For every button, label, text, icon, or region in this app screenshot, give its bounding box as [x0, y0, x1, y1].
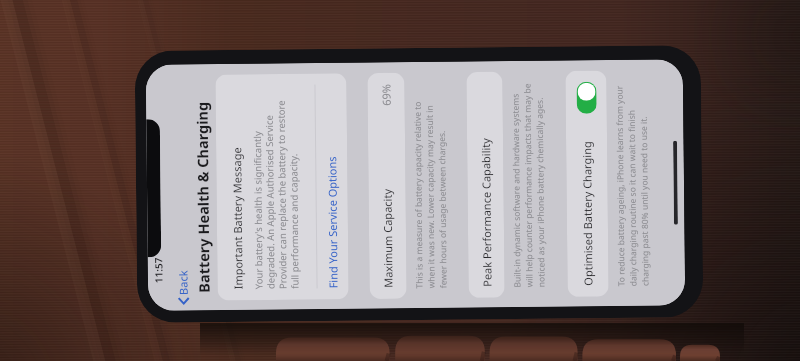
staticText: 11:57: [151, 257, 166, 283]
button[interactable]: Back: [175, 270, 191, 307]
button[interactable]: Maximum Capacity: [367, 84, 407, 288]
staticText: Optimised Battery Charging: [579, 141, 596, 286]
button[interactable]: Peak Performance Capability: [466, 83, 504, 287]
staticText: Important Battery Message: [229, 146, 246, 289]
other: Optimised Battery Charging: [576, 82, 597, 114]
staticText: Maximum Capacity: [379, 189, 395, 288]
staticText: This is a measure of battery capacity re…: [411, 84, 450, 289]
button[interactable]: Optimised Battery Charging: [565, 81, 608, 286]
staticText: Back: [175, 270, 191, 295]
staticText: Peak Performance Capability: [478, 138, 495, 287]
button[interactable]: Find Your Service Options: [315, 84, 349, 289]
staticText: Battery Health & Charging: [192, 102, 214, 293]
staticText: 69%: [378, 84, 394, 106]
staticText: To reduce battery ageing, iPhone learns …: [613, 82, 651, 286]
staticText: Your battery's health is significantly d…: [250, 85, 302, 289]
staticText: Built-in dynamic software and hardware s…: [509, 83, 548, 288]
staticText: Find Your Service Options: [324, 156, 341, 288]
